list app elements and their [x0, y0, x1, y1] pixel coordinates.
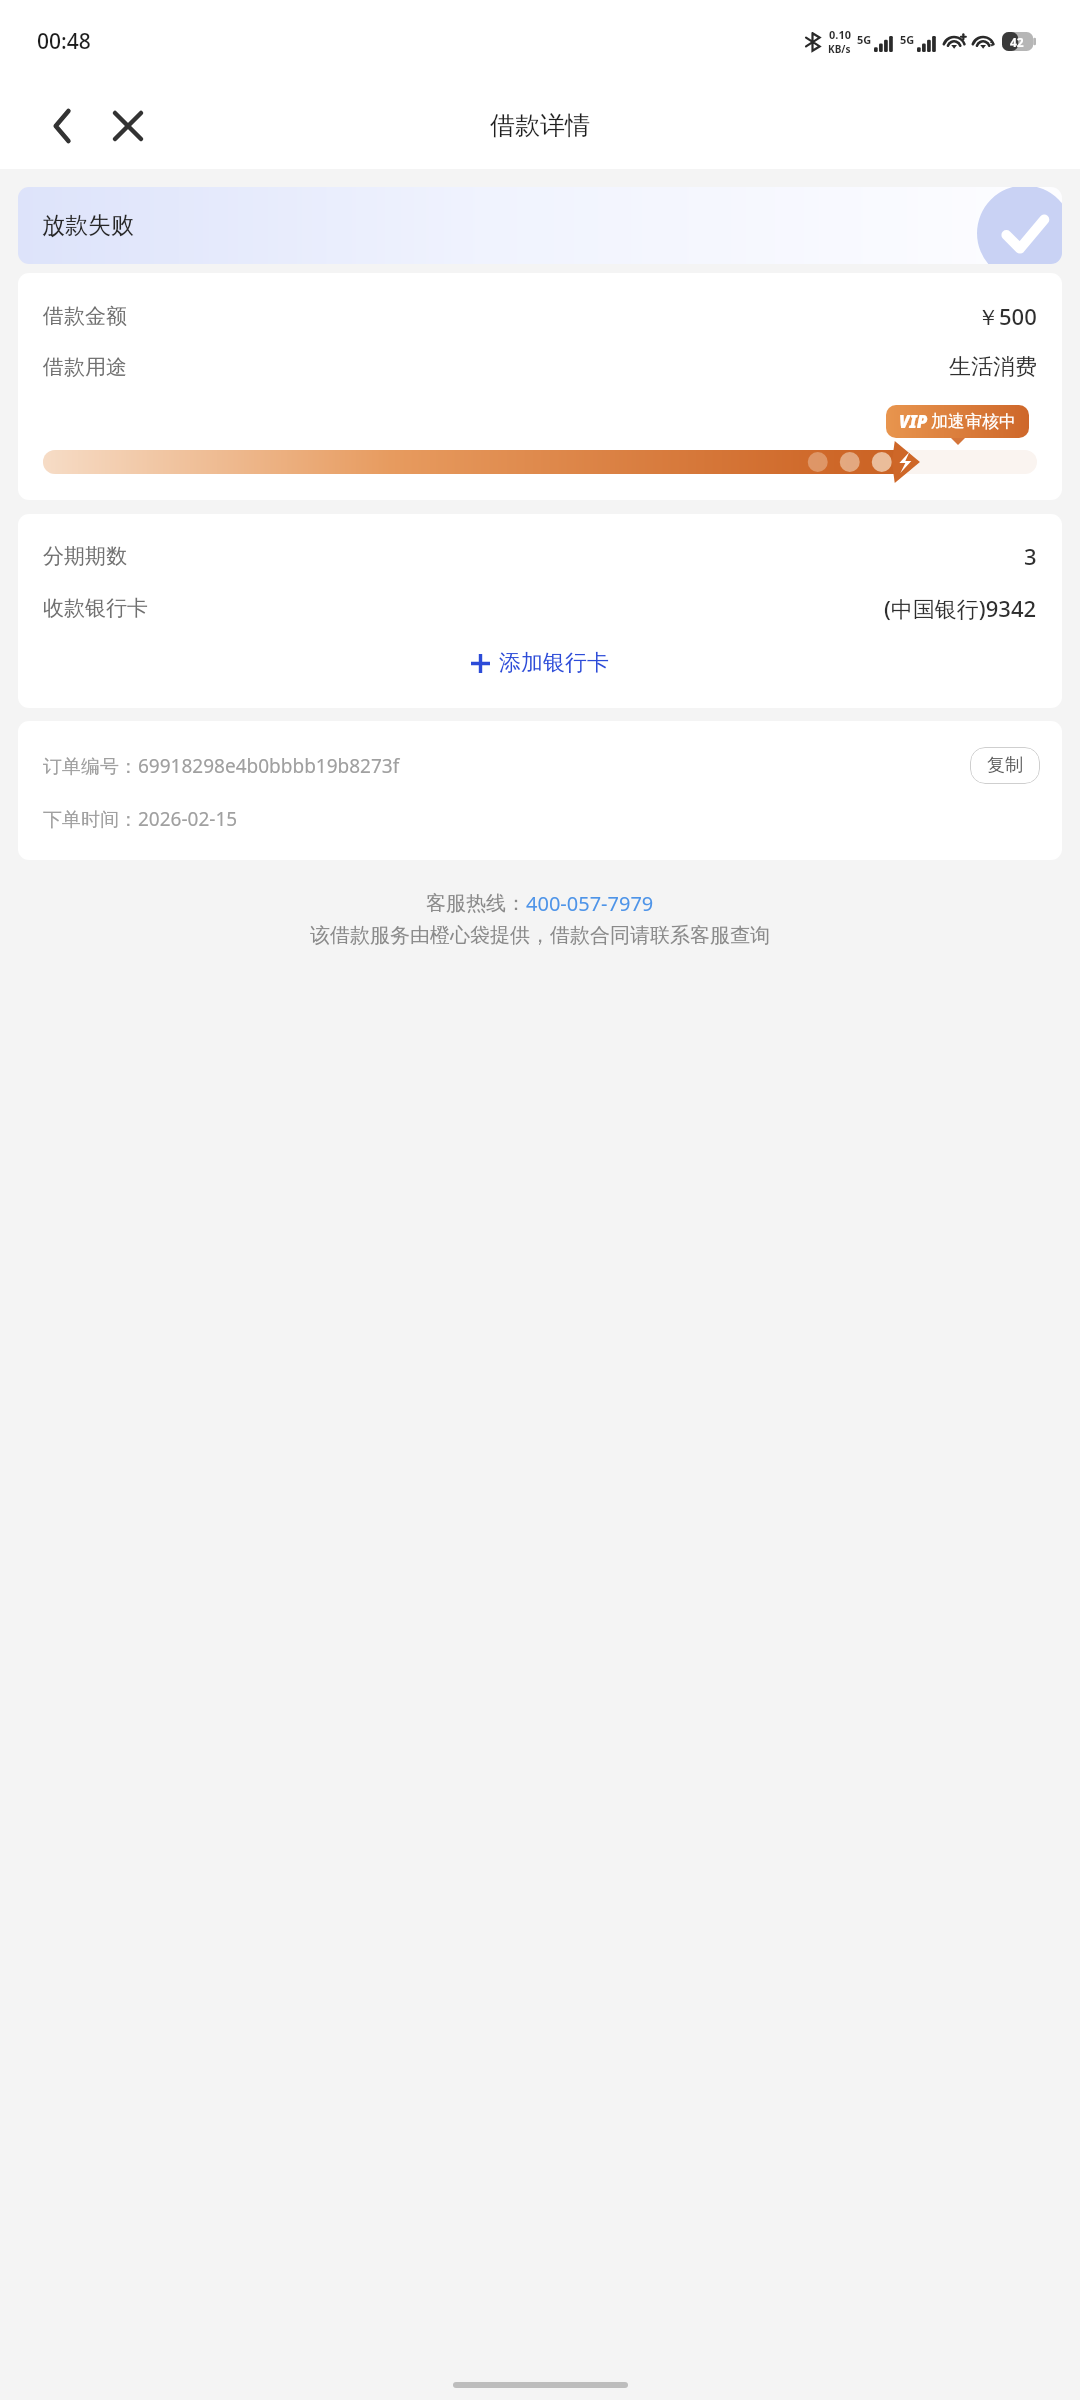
staticText: ￥500: [977, 301, 1037, 331]
staticText: KB/s: [828, 42, 851, 56]
staticText: 下单时间：2026-02-15: [43, 806, 238, 832]
staticText: (中国银行)9342: [884, 593, 1037, 623]
staticText: 00:48: [37, 27, 91, 56]
staticText: 42: [1010, 34, 1024, 50]
staticText: 加速审核中: [931, 411, 1016, 432]
staticText: 放款失败: [42, 211, 134, 240]
staticText: 0.10: [829, 27, 851, 42]
staticText: 5G: [900, 32, 915, 47]
staticText: 3: [1024, 541, 1037, 571]
button[interactable]: 添加银行卡: [43, 643, 1037, 683]
staticText: VIP: [899, 410, 928, 433]
staticText: 订单编号：69918298e4b0bbbb19b8273f: [43, 753, 970, 779]
staticText: 借款详情: [490, 110, 590, 141]
button[interactable]: Back: [36, 100, 88, 152]
staticText: 400-057-7979: [526, 890, 654, 917]
staticText: 复制: [987, 754, 1023, 777]
button[interactable]: 复制: [970, 747, 1040, 784]
staticText: 借款用途: [43, 354, 127, 380]
staticText: 借款金额: [43, 303, 127, 329]
button[interactable]: 放款失败: [18, 187, 1062, 264]
staticText: 添加银行卡: [499, 649, 609, 677]
staticText: 分期期数: [43, 543, 127, 569]
button[interactable]: Close: [102, 100, 154, 152]
staticText: 生活消费: [949, 353, 1037, 381]
staticText: 5G: [857, 32, 872, 47]
staticText: 该借款服务由橙心袋提供，借款合同请联系客服查询: [310, 923, 770, 948]
staticText: 收款银行卡: [43, 595, 148, 621]
staticText: 客服热线：: [426, 891, 526, 916]
button[interactable]: 400-057-7979: [526, 890, 654, 917]
